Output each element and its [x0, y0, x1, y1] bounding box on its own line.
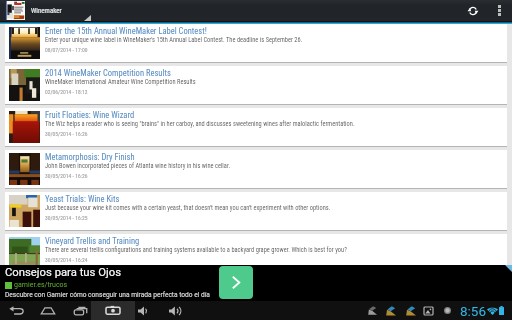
button[interactable]: More options — [487, 0, 511, 21]
staticText: Enter the 15th Annual WineMaker Label Co… — [45, 26, 207, 36]
button[interactable]: Screenshot — [91, 301, 135, 320]
staticText: Vineyard Trellis and Training — [45, 236, 140, 246]
staticText: Winemaker — [31, 7, 62, 15]
button[interactable]: Consejos para tus Ojos — [0, 265, 512, 301]
staticText: Enter your unique wine label in WineMake… — [45, 36, 303, 44]
staticText: Metamorphosis: Dry Finish — [45, 152, 135, 162]
staticText: 02/06/2014 - 18:12 — [45, 89, 88, 96]
staticText: 30/05/2014 - 16:24 — [45, 257, 88, 264]
button[interactable]: Refresh — [461, 0, 485, 21]
button[interactable]: Volume down — [134, 301, 154, 320]
button[interactable]: Enter the 15th Annual WineMaker Label Co… — [5, 24, 507, 62]
button[interactable]: Metamorphosis: Dry Finish — [5, 150, 507, 188]
button[interactable]: Vineyard Trellis and Training — [5, 234, 507, 272]
button[interactable]: Home — [38, 301, 58, 320]
button[interactable]: Back — [6, 301, 26, 320]
staticText: Yeast Trials: Wine Kits — [45, 194, 120, 204]
button[interactable]: Open advertisement — [219, 266, 253, 299]
button[interactable]: Yeast Trials: Wine Kits — [5, 192, 507, 230]
staticText: 8:56 — [460, 303, 487, 319]
button[interactable]: Volume up — [166, 301, 186, 320]
staticText: Consejos para tus Ojos — [5, 266, 121, 279]
staticText: 30/05/2014 - 16:25 — [45, 215, 88, 222]
staticText: WineMaker International Amateur Wine Com… — [45, 78, 196, 86]
staticText: garnier.es/trucos — [14, 281, 68, 289]
staticText: 08/07/2014 - 17:00 — [45, 47, 88, 54]
button[interactable]: 2014 WineMaker Competition Results — [5, 66, 507, 104]
staticText: Fruit Floaties: Wine Wizard — [45, 110, 135, 120]
staticText: John Bowen incorporated pieces of Atlant… — [45, 162, 231, 170]
staticText: 2014 WineMaker Competition Results — [45, 68, 171, 78]
staticText: Descubre con Garnier cómo conseguir una … — [5, 291, 210, 299]
button[interactable]: Recent apps — [70, 301, 90, 320]
staticText: 30/05/2014 - 16:26 — [45, 173, 88, 180]
button[interactable]: Fruit Floaties: Wine Wizard — [5, 108, 507, 146]
staticText: Just because your wine kit comes with a … — [45, 204, 331, 212]
staticText: 30/05/2014 - 16:26 — [45, 131, 88, 138]
staticText: There are several trellis configurations… — [45, 246, 347, 254]
staticText: The Wiz helps a reader who is seeing "br… — [45, 120, 355, 128]
